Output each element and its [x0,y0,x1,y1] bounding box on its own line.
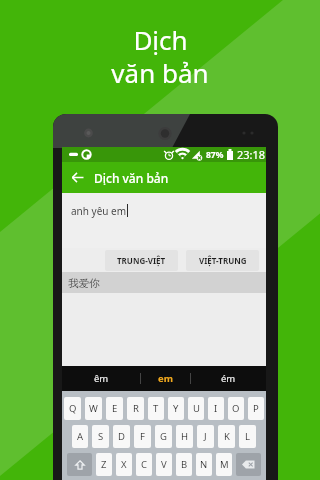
staticText: P [253,402,259,415]
button[interactable]: X [116,453,132,476]
staticText: em [158,372,173,385]
staticText: J [204,430,207,443]
button[interactable]: L [239,425,256,448]
button[interactable]: U [188,397,204,420]
staticText: F [140,430,145,443]
staticText: 87% [206,149,224,161]
button[interactable]: Backspace [236,453,261,476]
button[interactable]: V [156,453,172,476]
button[interactable]: D [113,425,130,448]
button[interactable]: êm [62,366,140,391]
staticText: ém [221,372,236,385]
button[interactable]: C [136,453,152,476]
button[interactable]: VIỆT-TRUNG [186,250,259,271]
button[interactable]: P [248,397,264,420]
staticText: V [161,458,167,471]
staticText: M [220,458,229,471]
staticText: A [77,430,84,443]
staticText: B [181,458,188,471]
button[interactable]: TRUNG-VIỆT [105,250,178,271]
staticText: S [98,430,104,443]
button[interactable]: N [196,453,212,476]
button[interactable]: J [197,425,214,448]
button[interactable]: Q [64,397,81,420]
button[interactable]: O [228,397,244,420]
staticText: anh yêu em [71,204,127,218]
button[interactable]: F [134,425,151,448]
staticText: U [193,402,200,415]
button[interactable]: E [106,397,123,420]
staticText: Y [173,402,179,415]
button[interactable]: B [176,453,192,476]
staticText: văn bản [111,55,209,90]
button[interactable]: I [208,397,224,420]
button[interactable]: R [127,397,144,420]
button[interactable]: A [72,425,88,448]
staticText: I [214,402,218,415]
staticText: T [153,402,159,415]
staticText: êm [94,372,109,385]
staticText: 我爱你 [68,277,100,290]
staticText: E [112,402,118,415]
staticText: G [160,430,167,443]
button[interactable]: W [85,397,102,420]
button[interactable]: H [176,425,193,448]
button[interactable]: ém [191,366,266,391]
button[interactable]: K [218,425,235,448]
staticText: W [89,402,98,415]
staticText: O [232,402,240,415]
staticText: Dịch văn bản [94,170,169,186]
staticText: D [118,430,125,443]
staticText: R [133,402,139,415]
staticText: 23:18 [237,147,266,162]
staticText: Dịch [133,22,188,57]
button[interactable]: Shift [67,453,92,476]
button[interactable]: Z [96,453,112,476]
staticText: VIỆT-TRUNG [199,255,247,266]
button[interactable]: S [92,425,109,448]
button[interactable]: em [141,366,190,391]
button[interactable]: Y [168,397,184,420]
button[interactable]: M [216,453,232,476]
staticText: H [181,430,189,443]
button[interactable]: Back [62,162,92,193]
staticText: X [121,458,127,471]
staticText: Z [101,458,107,471]
button[interactable]: T [148,397,164,420]
staticText: N [200,458,208,471]
button[interactable]: G [155,425,172,448]
staticText: TRUNG-VIỆT [117,255,166,266]
staticText: C [141,458,148,471]
staticText: K [224,430,230,443]
staticText: Q [69,402,77,415]
staticText: L [245,430,250,443]
